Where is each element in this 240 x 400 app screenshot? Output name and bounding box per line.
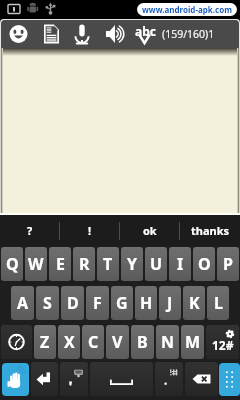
staticText: www.android-apk.com <box>142 4 232 15</box>
button[interactable]: H <box>135 286 157 320</box>
staticText: M <box>185 331 201 353</box>
staticText: B <box>137 331 148 353</box>
button[interactable]: Comma <box>60 362 88 396</box>
button[interactable]: Period <box>155 362 183 396</box>
staticText: F <box>93 292 102 314</box>
button[interactable]: X <box>58 325 80 359</box>
button[interactable]: L <box>207 286 229 320</box>
staticText: X <box>64 331 75 353</box>
staticText: J <box>167 292 173 314</box>
button[interactable]: Keyboard layout <box>219 363 240 396</box>
button[interactable]: 12# <box>206 325 239 359</box>
button[interactable]: U <box>145 247 167 281</box>
staticText: S <box>43 292 52 314</box>
staticText: T <box>103 253 113 275</box>
button[interactable]: Sound <box>96 19 126 48</box>
button[interactable]: D <box>61 286 84 320</box>
button[interactable]: F <box>86 286 109 320</box>
button[interactable]: O <box>193 247 215 281</box>
button[interactable]: M <box>181 325 204 359</box>
staticText: G <box>116 292 128 314</box>
button[interactable]: Q <box>1 247 23 281</box>
button[interactable]: Recent <box>1 325 32 359</box>
button[interactable]: R <box>73 247 95 281</box>
staticText: H <box>140 292 153 314</box>
button[interactable]: J <box>159 286 181 320</box>
button[interactable]: G <box>111 286 133 320</box>
button[interactable]: Clipboard <box>34 19 65 48</box>
button[interactable]: ? <box>0 215 60 246</box>
staticText: ok <box>143 223 157 238</box>
staticText: ! <box>88 223 92 238</box>
staticText: D <box>67 292 79 314</box>
staticText: N <box>161 331 175 353</box>
staticText: Q <box>6 253 19 275</box>
button[interactable]: P <box>217 247 239 281</box>
button[interactable]: N <box>156 325 179 359</box>
button[interactable]: thanks <box>180 215 240 246</box>
button[interactable]: V <box>106 325 129 359</box>
button[interactable]: E <box>49 247 71 281</box>
button[interactable]: C <box>82 325 104 359</box>
staticText: abc <box>135 23 156 39</box>
button[interactable]: B <box>131 325 154 359</box>
button[interactable]: A <box>11 286 34 320</box>
staticText: E <box>56 253 65 275</box>
button[interactable]: Emoji <box>0 19 34 48</box>
button[interactable]: Voice input <box>65 19 96 48</box>
button[interactable]: Spell check <box>126 19 156 48</box>
staticText: K <box>189 292 200 314</box>
button[interactable]: Z <box>34 325 56 359</box>
staticText: P <box>223 253 233 275</box>
button[interactable]: K <box>183 286 205 320</box>
button[interactable]: Handwriting <box>2 363 29 396</box>
staticText: (159/160)1 <box>162 27 215 41</box>
staticText: A <box>17 292 29 314</box>
staticText: 12# <box>212 337 234 353</box>
button[interactable]: ! <box>60 215 120 246</box>
staticText: V <box>112 331 123 353</box>
button[interactable]: Y <box>121 247 143 281</box>
staticText: Y <box>127 253 138 275</box>
button[interactable]: Enter <box>31 362 58 396</box>
staticText: I <box>177 253 184 275</box>
staticText: W <box>28 253 44 275</box>
staticText: Z <box>40 331 50 353</box>
button[interactable]: Backspace <box>185 362 218 396</box>
button[interactable]: T <box>97 247 119 281</box>
staticText: C <box>88 331 99 353</box>
staticText: R <box>79 253 90 275</box>
staticText: U <box>150 253 163 275</box>
staticText: ? <box>27 223 33 238</box>
staticText: O <box>198 253 211 275</box>
button[interactable]: Space <box>90 362 153 396</box>
staticText: L <box>214 292 223 314</box>
button[interactable]: S <box>36 286 59 320</box>
button[interactable]: W <box>25 247 47 281</box>
button[interactable]: I <box>169 247 191 281</box>
button[interactable]: ok <box>120 215 180 246</box>
staticText: thanks <box>191 223 230 238</box>
